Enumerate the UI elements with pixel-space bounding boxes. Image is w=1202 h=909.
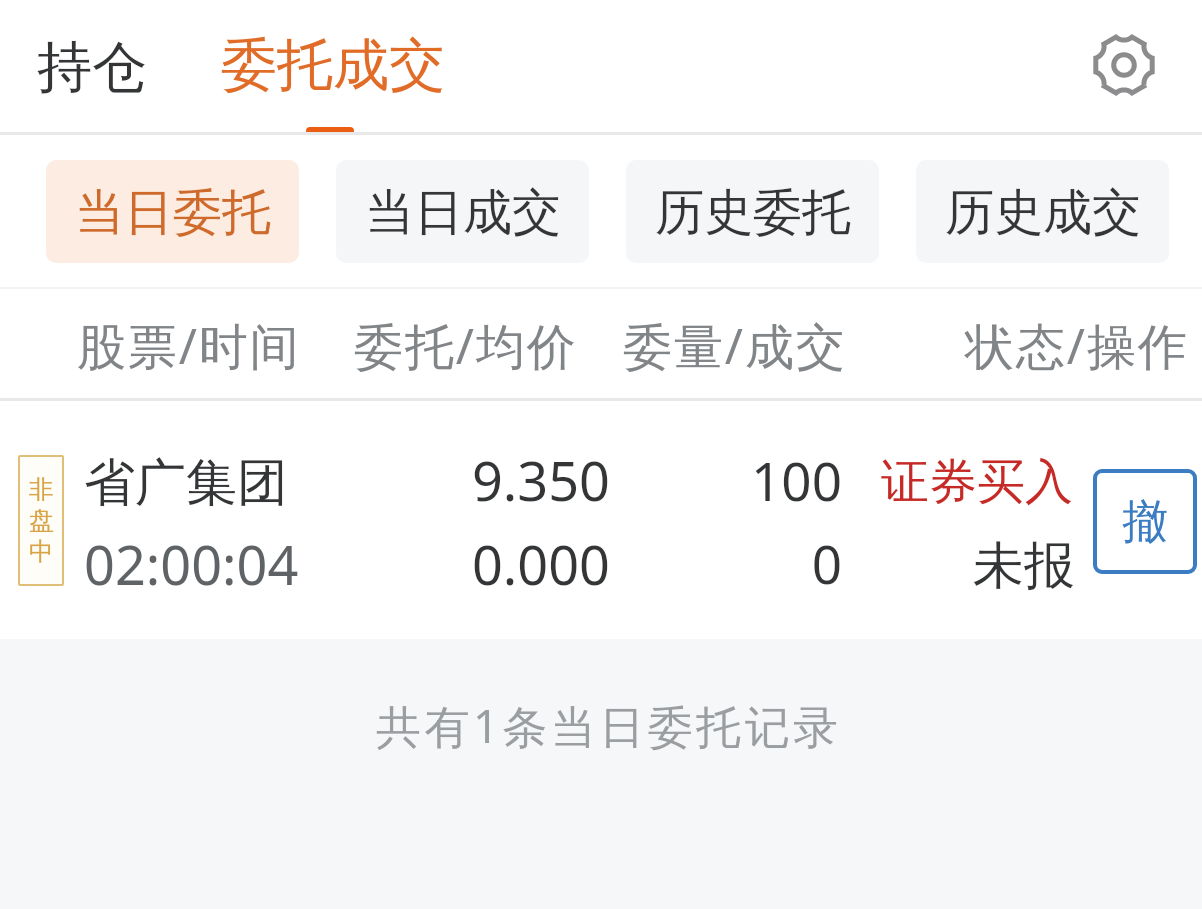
button[interactable]: 委托成交 — [190, 0, 470, 132]
staticText: 中 — [29, 536, 54, 567]
button[interactable]: 持仓 — [10, 0, 170, 132]
staticText: 撤 — [1122, 493, 1168, 551]
staticText: 当日委托 — [75, 182, 271, 244]
button[interactable]: Settings — [1068, 9, 1180, 121]
staticText: 状态/操作 — [965, 312, 1189, 379]
staticText: 0.000 — [140, 527, 610, 601]
staticText: 持仓 — [37, 33, 147, 102]
staticText: 委量/成交 — [623, 312, 847, 379]
staticText: 非 — [29, 474, 54, 505]
staticText: 100 — [442, 444, 842, 516]
staticText: 共有1条当日委托记录 — [376, 695, 842, 756]
staticText: 盘 — [29, 505, 54, 536]
staticText: 02:00:04 — [84, 527, 299, 601]
button[interactable]: 历史委托 — [626, 160, 879, 263]
staticText: 委托/均价 — [354, 312, 578, 379]
staticText: 证券买入 — [673, 452, 1073, 512]
staticText: 9.350 — [140, 443, 610, 517]
button[interactable]: 历史成交 — [916, 160, 1169, 263]
staticText: 0 — [442, 527, 842, 599]
staticText: 省广集团 — [84, 451, 288, 515]
button[interactable]: 非 — [0, 401, 1202, 639]
staticText: 未报 — [675, 534, 1075, 598]
staticText: 历史委托 — [655, 182, 851, 244]
staticText: 委托成交 — [221, 30, 445, 101]
staticText: 当日成交 — [365, 182, 561, 244]
staticText: 历史成交 — [945, 182, 1141, 244]
button[interactable]: 当日委托 — [46, 160, 299, 263]
button[interactable]: 当日成交 — [336, 160, 589, 263]
staticText: 股票/时间 — [77, 312, 301, 379]
button[interactable]: 撤 — [1093, 469, 1197, 574]
